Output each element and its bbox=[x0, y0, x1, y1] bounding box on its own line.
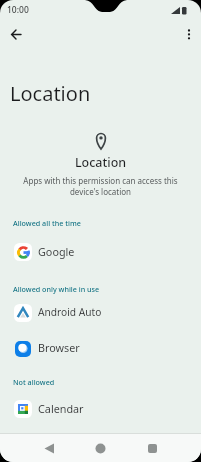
button[interactable]: Android Auto bbox=[0, 299, 201, 327]
staticText: Google bbox=[38, 244, 75, 259]
staticText: Allowed all the time bbox=[13, 218, 81, 228]
button[interactable] bbox=[142, 438, 162, 458]
button[interactable]: Google bbox=[0, 238, 201, 266]
staticText: 10:00 bbox=[7, 4, 29, 16]
staticText: Not allowed bbox=[13, 377, 55, 387]
staticText: Browser bbox=[38, 340, 80, 355]
button[interactable] bbox=[178, 23, 200, 47]
staticText: Location bbox=[0, 154, 201, 171]
staticText: Apps with this permission can access thi… bbox=[0, 175, 201, 186]
button[interactable] bbox=[39, 438, 59, 458]
staticText: Allowed only while in use bbox=[13, 284, 100, 294]
staticText: Calendar bbox=[38, 401, 84, 416]
staticText: Android Auto bbox=[38, 305, 102, 319]
staticText: device's location bbox=[0, 186, 201, 197]
staticText: Location bbox=[10, 80, 91, 107]
button[interactable]: Calendar bbox=[0, 395, 201, 423]
button[interactable] bbox=[90, 438, 110, 458]
button[interactable]: Browser bbox=[0, 334, 201, 362]
button[interactable] bbox=[4, 23, 28, 47]
